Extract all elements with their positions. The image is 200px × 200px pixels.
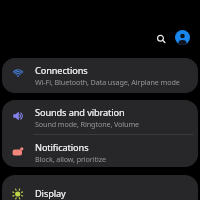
button[interactable]: Connections xyxy=(2,58,198,93)
staticText: Sounds and vibration xyxy=(35,106,125,119)
staticText: Display xyxy=(35,187,66,200)
button[interactable] xyxy=(152,30,169,47)
staticText: Notifications xyxy=(35,141,89,154)
staticText: Sound mode, Ringtone, Volume xyxy=(35,119,140,129)
staticText: Connections xyxy=(35,64,88,77)
button[interactable]: Sounds and vibration xyxy=(2,100,198,134)
button[interactable]: Notifications xyxy=(2,134,198,167)
staticText: Wi-Fi, Bluetooth, Data usage, Airplane m… xyxy=(35,77,180,87)
staticText: Block, allow, prioritize xyxy=(35,154,106,164)
button[interactable] xyxy=(175,30,190,45)
button[interactable]: Display xyxy=(2,175,198,200)
